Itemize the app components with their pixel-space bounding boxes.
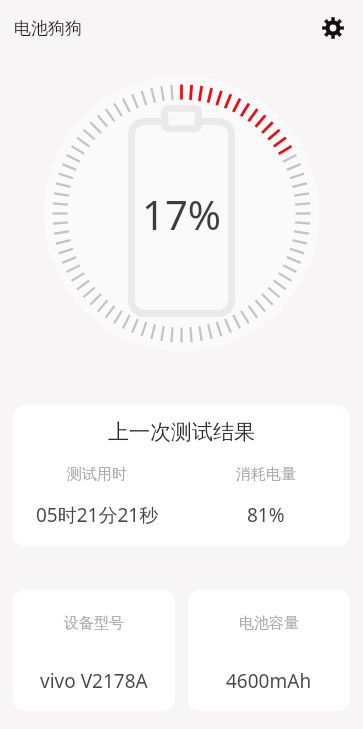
staticText: 电池狗狗	[14, 18, 82, 39]
button[interactable]: 上一次测试结果	[13, 405, 350, 546]
staticText: 17%	[142, 187, 221, 241]
button[interactable]: 设备型号	[13, 590, 175, 711]
staticText: 上一次测试结果	[13, 419, 350, 445]
button[interactable]: Settings	[318, 13, 348, 43]
staticText: 4600mAh	[226, 668, 312, 694]
staticText: 电池容量	[239, 614, 299, 633]
staticText: 设备型号	[64, 614, 124, 633]
button[interactable]: 电池容量	[188, 590, 350, 711]
staticText: 测试用时	[67, 465, 127, 484]
staticText: vivo V2178A	[40, 668, 148, 694]
staticText: 05时21分21秒	[36, 502, 159, 528]
staticText: 81%	[247, 502, 285, 528]
staticText: 消耗电量	[236, 465, 296, 484]
